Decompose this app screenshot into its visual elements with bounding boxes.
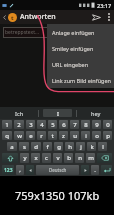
staticText: .	[94, 166, 96, 174]
button[interactable]: URL eingeben	[47, 56, 114, 72]
button[interactable]: d	[31, 142, 41, 151]
button[interactable]: hey	[77, 107, 114, 119]
staticText: hey	[91, 110, 101, 117]
button[interactable]: Smiley einfügen	[47, 40, 114, 56]
staticText: 0	[106, 121, 110, 129]
button[interactable]: e	[26, 131, 35, 140]
button[interactable]: n	[75, 153, 84, 163]
staticText: f	[46, 143, 49, 151]
button[interactable]: 4	[37, 120, 46, 129]
staticText: Deutsch	[49, 167, 67, 173]
button[interactable]: Zurück	[0, 10, 8, 24]
staticText: ,	[19, 166, 21, 174]
staticText: x	[34, 154, 38, 162]
staticText: Link zum Bild einfügen	[52, 77, 111, 84]
staticText: l	[102, 143, 104, 151]
staticText: I	[57, 110, 59, 117]
button[interactable]: o	[92, 131, 101, 140]
staticText: u	[73, 132, 77, 140]
button[interactable]: Link zum Bild einfügen	[47, 72, 114, 88]
button[interactable]: Senden	[89, 10, 104, 24]
button[interactable]: Ich	[0, 107, 38, 119]
button[interactable]: m	[86, 153, 95, 163]
button[interactable]: h	[65, 142, 74, 151]
button[interactable]: w	[14, 131, 24, 140]
staticText: 1	[5, 121, 9, 129]
staticText: 23:17	[97, 2, 112, 9]
staticText: q	[5, 132, 9, 140]
staticText: i	[85, 132, 87, 140]
staticText: t	[51, 132, 54, 140]
staticText: r	[40, 132, 43, 140]
staticText: m	[88, 154, 94, 162]
button[interactable]: Weitere Optionen	[104, 10, 114, 24]
staticText: e	[29, 132, 33, 140]
button[interactable]: g	[54, 142, 63, 151]
button[interactable]: s	[19, 142, 29, 151]
staticText: w	[17, 132, 22, 140]
button[interactable]: Eingabe	[101, 165, 112, 175]
button[interactable]: r	[37, 131, 46, 140]
staticText: t	[11, 14, 14, 22]
button[interactable]: 7	[70, 120, 79, 129]
staticText: 3	[29, 121, 33, 129]
button[interactable]: x	[31, 153, 40, 163]
staticText: 4	[40, 121, 44, 129]
button[interactable]: u	[70, 131, 79, 140]
staticText: Antworten	[20, 12, 56, 22]
staticText: 2	[17, 121, 21, 129]
button[interactable]: .	[91, 165, 99, 175]
button[interactable]: 6	[59, 120, 68, 129]
button[interactable]: Löschen	[97, 153, 112, 163]
staticText: Ich	[15, 110, 24, 117]
button[interactable]: t	[48, 131, 57, 140]
staticText: g	[57, 143, 61, 151]
button[interactable]: 0	[103, 120, 112, 129]
button[interactable]: p	[103, 131, 112, 140]
button[interactable]: k	[87, 142, 96, 151]
staticText: URL eingeben	[52, 61, 89, 68]
button[interactable]: ,	[16, 165, 24, 175]
staticText: betreppstext…	[5, 29, 39, 36]
button[interactable]: a	[7, 142, 17, 151]
button[interactable]: f	[43, 142, 52, 151]
button[interactable]: I	[39, 107, 76, 119]
button[interactable]: y	[20, 153, 29, 163]
staticText: j	[80, 143, 82, 151]
button[interactable]: 2	[14, 120, 24, 129]
button[interactable]: b	[64, 153, 73, 163]
staticText: 5	[51, 121, 55, 129]
staticText: 7	[73, 121, 77, 129]
staticText: y	[23, 154, 27, 162]
button[interactable]: Cursor links	[26, 165, 34, 175]
button[interactable]: Anlage einfügen	[47, 24, 114, 40]
button[interactable]: Cursor rechts	[81, 165, 89, 175]
button[interactable]: c	[42, 153, 51, 163]
button[interactable]: l	[98, 142, 107, 151]
button[interactable]: i	[81, 131, 90, 140]
staticText: 759x1350 107kb	[15, 188, 100, 203]
staticText: p	[106, 132, 110, 140]
button[interactable]: Zahlen und Symbole	[2, 165, 14, 175]
button[interactable]: v	[53, 153, 62, 163]
staticText: a	[10, 143, 14, 151]
staticText: z	[62, 132, 65, 140]
staticText: 9	[95, 121, 99, 129]
button[interactable]: q	[2, 131, 12, 140]
staticText: b	[67, 154, 71, 162]
button[interactable]: z	[59, 131, 68, 140]
button[interactable]: 3	[26, 120, 35, 129]
button[interactable]: 5	[48, 120, 57, 129]
staticText: Anlage einfügen	[52, 29, 95, 36]
button[interactable]: betreppstext…	[3, 27, 48, 38]
button[interactable]: j	[76, 142, 85, 151]
button[interactable]: 9	[92, 120, 101, 129]
button[interactable]: Deutsch	[36, 165, 79, 175]
button[interactable]: 8	[81, 120, 90, 129]
button[interactable]: 1	[2, 120, 12, 129]
button[interactable]: Umschalt	[2, 153, 18, 163]
staticText: d	[34, 143, 38, 151]
staticText: k	[90, 143, 94, 151]
staticText: c	[45, 154, 48, 162]
staticText: 8	[84, 121, 88, 129]
